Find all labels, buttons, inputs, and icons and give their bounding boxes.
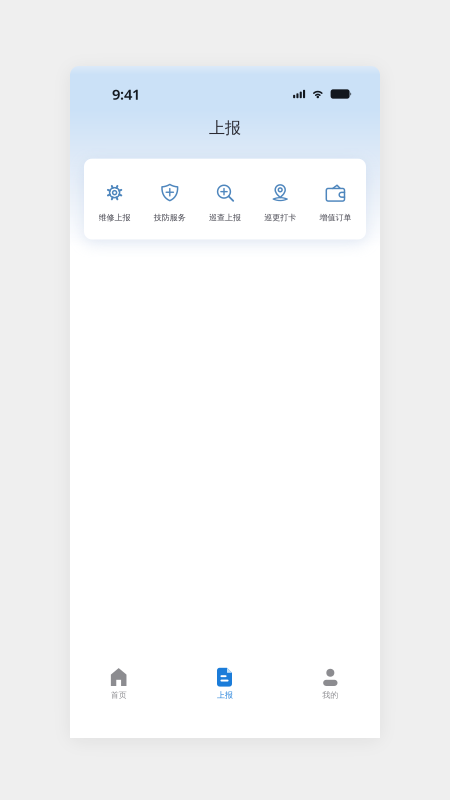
button[interactable]: 首页: [67, 667, 170, 700]
button[interactable]: 我的: [279, 667, 382, 700]
button[interactable]: 增值订单: [308, 183, 363, 222]
staticText: 上报: [217, 690, 233, 700]
button[interactable]: 上报: [173, 667, 277, 700]
staticText: 维修上报: [99, 213, 131, 222]
staticText: 技防服务: [154, 213, 186, 222]
staticText: 我的: [322, 690, 338, 700]
button[interactable]: 巡查上报: [197, 183, 253, 222]
staticText: 上报: [209, 118, 241, 138]
staticText: 增值订单: [319, 213, 351, 222]
staticText: 巡更打卡: [264, 213, 296, 222]
staticText: 巡查上报: [209, 213, 241, 222]
button[interactable]: 技防服务: [142, 183, 197, 222]
staticText: 9:41: [112, 84, 140, 104]
button[interactable]: 巡更打卡: [253, 183, 308, 222]
button[interactable]: 维修上报: [87, 183, 142, 222]
staticText: 首页: [111, 690, 127, 700]
